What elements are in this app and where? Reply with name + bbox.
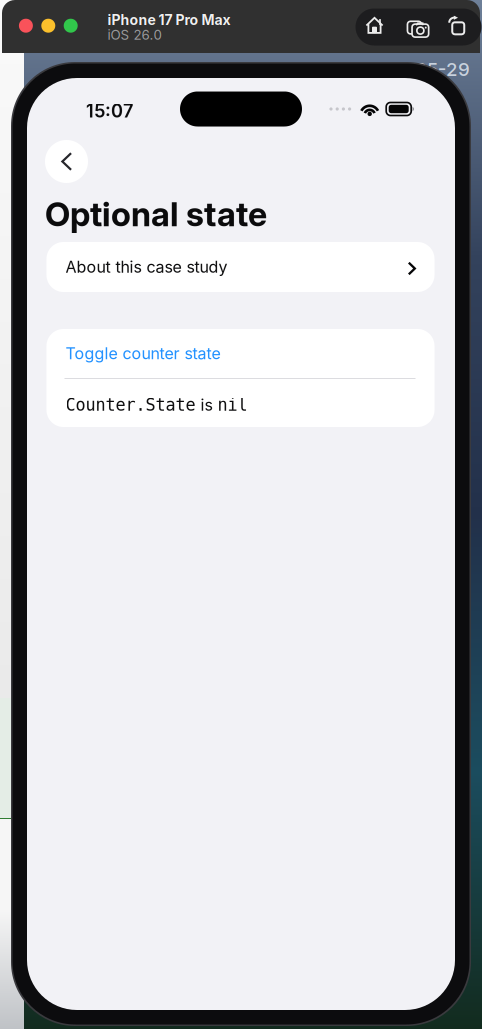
button[interactable]: Screenshot bbox=[405, 16, 426, 35]
staticText: 15:07 bbox=[86, 100, 133, 122]
staticText: nil bbox=[217, 395, 247, 415]
staticText: Counter.State bbox=[65, 395, 195, 415]
button[interactable]: About this case study bbox=[46, 242, 434, 292]
staticText: Toggle counter state bbox=[65, 344, 220, 363]
staticText: Optional state bbox=[45, 194, 267, 234]
staticText: iPhone 17 Pro Max bbox=[107, 11, 230, 28]
button[interactable]: Minimize window bbox=[41, 19, 55, 33]
staticText: is bbox=[195, 395, 217, 415]
button[interactable]: Share bbox=[448, 16, 464, 35]
staticText: About this case study bbox=[65, 257, 227, 277]
button[interactable]: Zoom window bbox=[64, 19, 78, 33]
button[interactable]: Close window bbox=[19, 19, 33, 33]
button[interactable]: Back bbox=[45, 140, 88, 183]
button[interactable]: Toggle counter state bbox=[46, 329, 434, 378]
staticText: 05-29 bbox=[415, 58, 470, 81]
button[interactable]: Home bbox=[365, 16, 383, 35]
staticText: iOS 26.0 bbox=[107, 27, 161, 43]
